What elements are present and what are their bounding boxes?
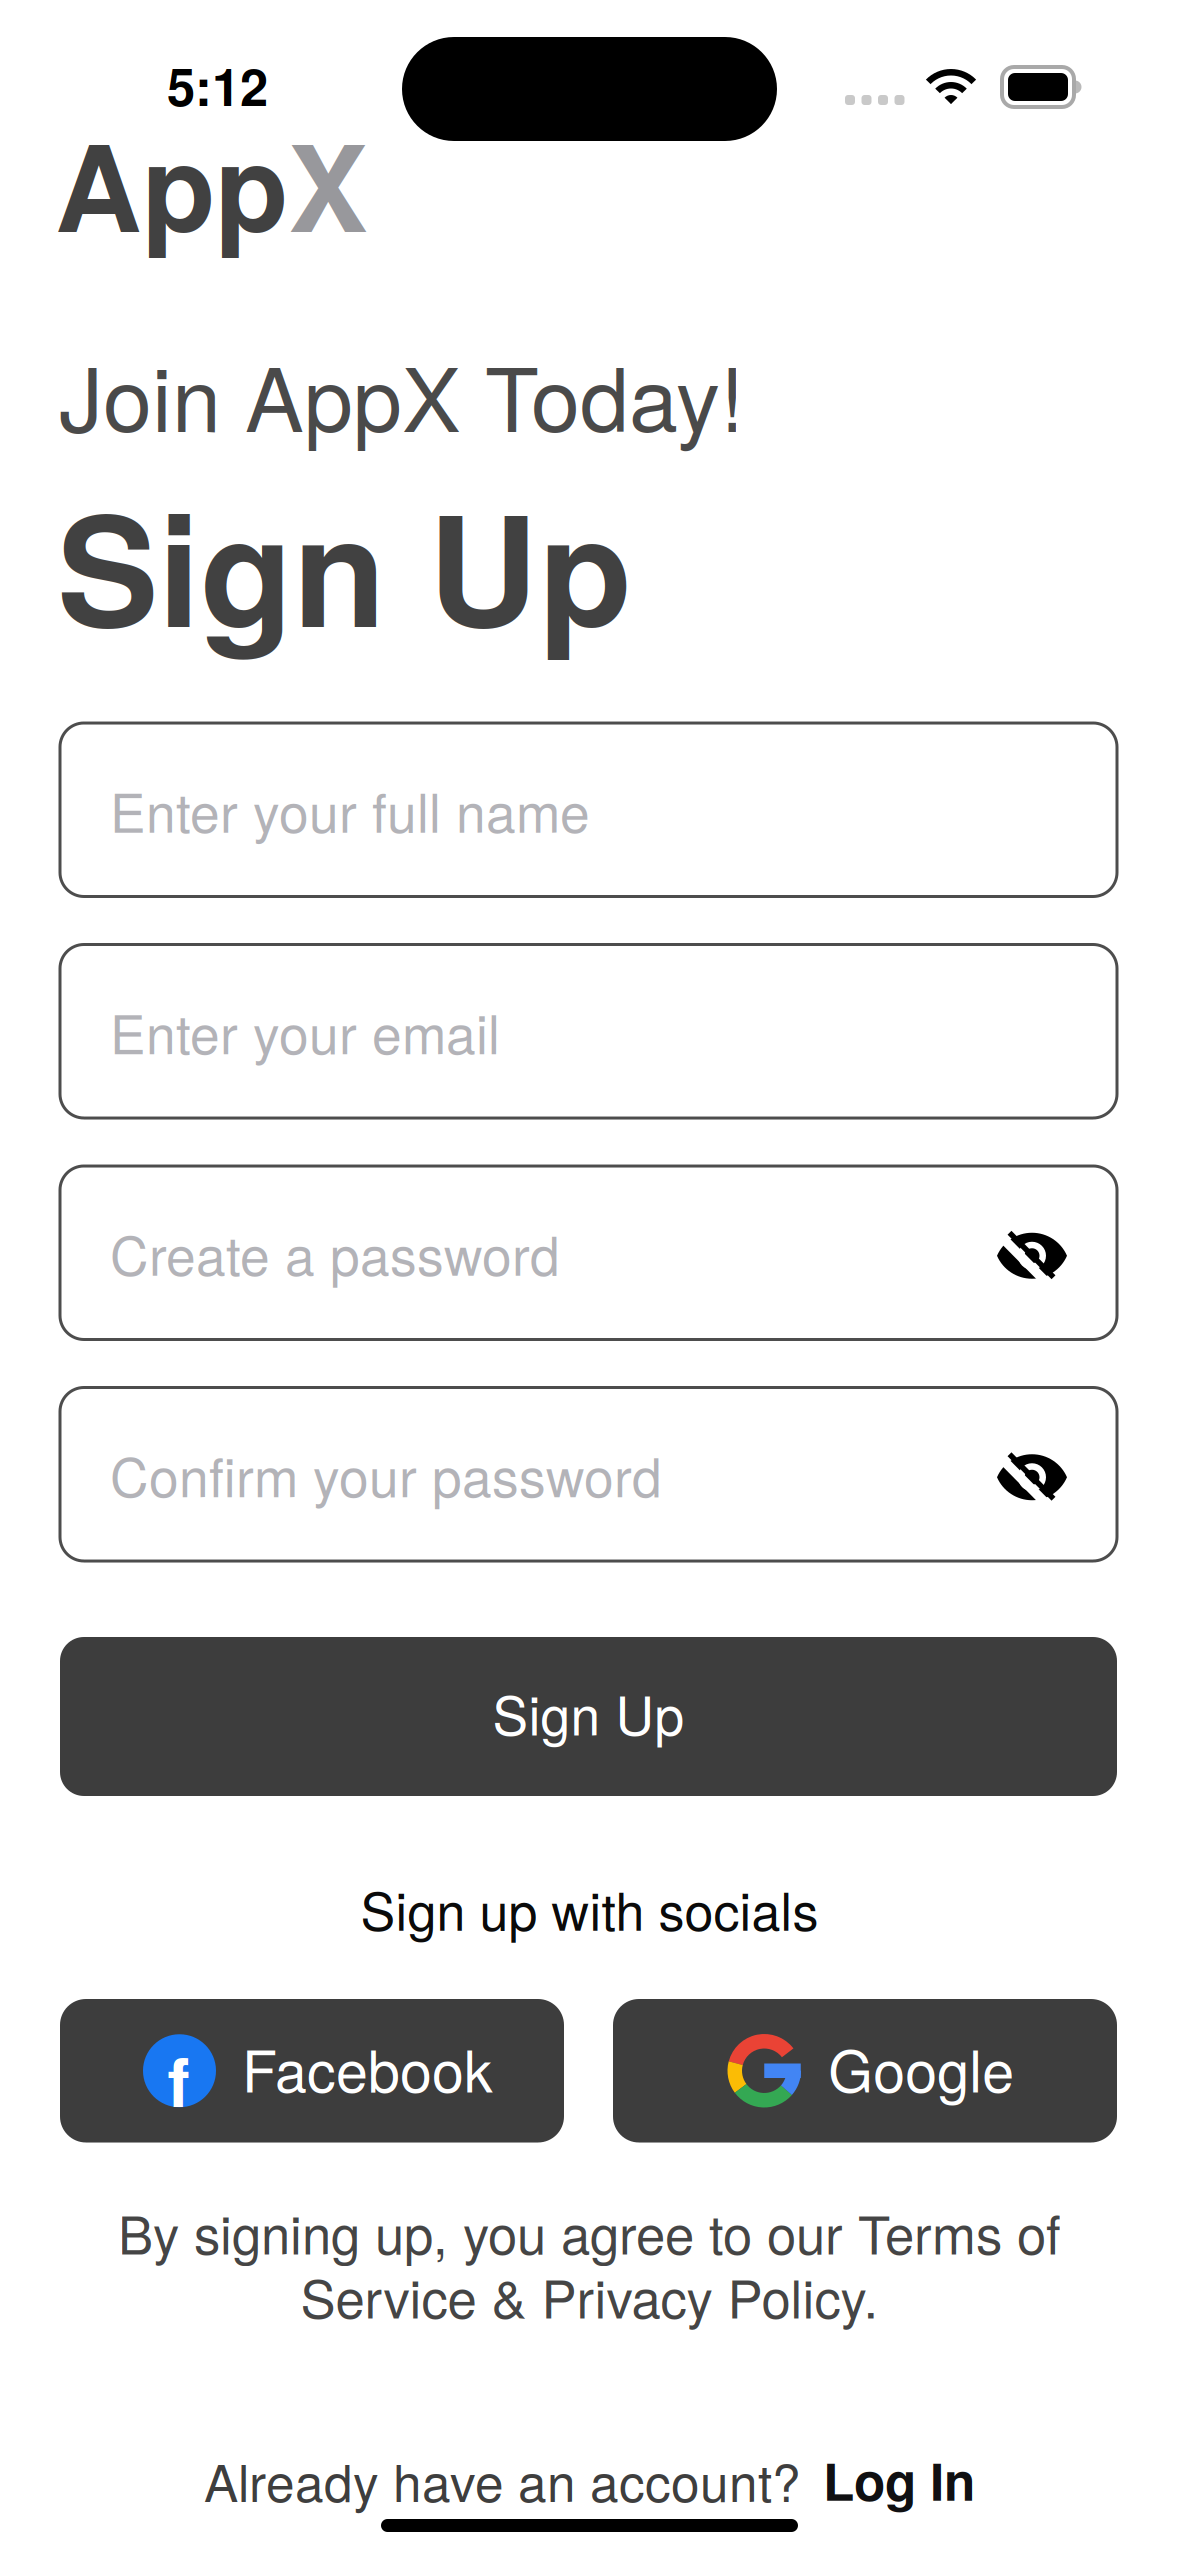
staticText: App	[55, 97, 288, 269]
button[interactable]: Show password	[997, 1230, 1067, 1276]
button[interactable]: Confirm your password	[60, 1387, 1117, 1561]
staticText: By signing up, you agree to our Terms of	[118, 2194, 1061, 2269]
staticText: Join AppX Today!	[59, 331, 744, 457]
staticText: 5:12	[167, 49, 268, 122]
button[interactable]: Show password	[997, 1451, 1067, 1497]
staticText: Log In	[823, 2443, 975, 2516]
staticText: Enter your email	[110, 993, 500, 1069]
staticText: f	[167, 2032, 189, 2127]
staticText: Service & Privacy Policy.	[300, 2258, 878, 2333]
button[interactable]: Create a password	[60, 1166, 1117, 1339]
staticText: Sign Up	[57, 456, 632, 674]
staticText: Already have an account?	[204, 2443, 801, 2516]
button[interactable]: f	[60, 1999, 564, 2142]
staticText: Google	[828, 2027, 1014, 2109]
staticText: Sign up with socials	[360, 1871, 818, 1945]
staticText: Confirm your password	[110, 1436, 662, 1512]
staticText: Sign Up	[492, 1674, 684, 1751]
button[interactable]: Sign Up	[60, 1637, 1117, 1796]
button[interactable]: Log In	[823, 2443, 975, 2516]
button[interactable]: Enter your full name	[60, 723, 1117, 896]
staticText: X	[288, 97, 368, 269]
staticText: Create a password	[110, 1215, 560, 1291]
staticText: Facebook	[242, 2027, 493, 2109]
button[interactable]: Google	[613, 1999, 1117, 2142]
button[interactable]: Enter your email	[60, 944, 1117, 1118]
staticText: Enter your full name	[110, 772, 590, 848]
